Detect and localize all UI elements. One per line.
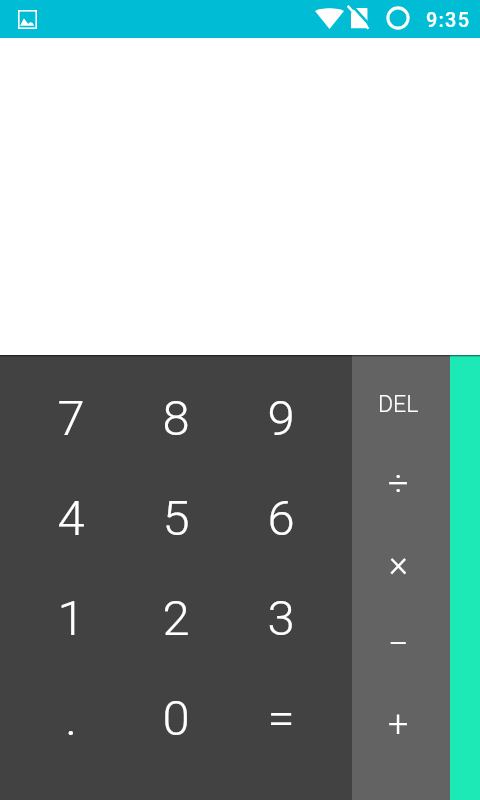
button[interactable]: .	[18, 668, 123, 768]
button[interactable]: +	[352, 684, 445, 764]
button[interactable]: 5	[123, 468, 228, 568]
staticText: 9:35	[426, 8, 471, 31]
button[interactable]: 6	[228, 468, 333, 568]
staticText: 7	[57, 390, 85, 447]
button[interactable]: 2	[123, 568, 228, 668]
button[interactable]: 8	[123, 368, 228, 468]
button[interactable]: =	[228, 668, 333, 768]
button[interactable]: 7	[18, 368, 123, 468]
staticText: −	[388, 623, 409, 665]
button[interactable]: DEL	[352, 364, 445, 444]
staticText: 4	[57, 490, 85, 547]
staticText: 0	[162, 690, 190, 747]
button[interactable]: 4	[18, 468, 123, 568]
staticText: =	[267, 690, 295, 747]
button[interactable]: Equals	[450, 355, 480, 800]
staticText: 6	[267, 490, 295, 547]
button[interactable]: −	[352, 604, 445, 684]
button[interactable]: 9	[228, 368, 333, 468]
button[interactable]: 1	[18, 568, 123, 668]
staticText: 8	[162, 390, 190, 447]
staticText: +	[388, 704, 409, 746]
staticText: ×	[389, 543, 408, 585]
staticText: .	[65, 690, 77, 747]
staticText: 3	[267, 590, 295, 647]
staticText: 9	[267, 390, 295, 447]
staticText: ÷	[388, 463, 409, 505]
button[interactable]: 3	[228, 568, 333, 668]
staticText: 2	[162, 590, 190, 647]
staticText: 1	[57, 590, 85, 647]
button[interactable]: ×	[352, 524, 445, 604]
staticText: 5	[162, 490, 190, 547]
staticText: DEL	[378, 391, 419, 418]
button[interactable]: 0	[123, 668, 228, 768]
button[interactable]: ÷	[352, 444, 445, 524]
